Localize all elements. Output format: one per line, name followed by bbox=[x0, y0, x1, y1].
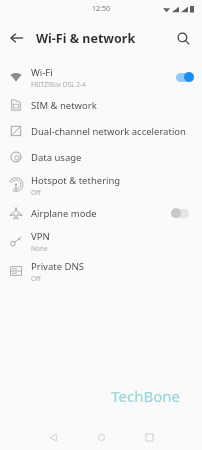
staticText: Off bbox=[31, 274, 41, 283]
staticText: None bbox=[31, 244, 48, 253]
button[interactable]: Airplane mode bbox=[0, 200, 202, 226]
button[interactable]: Home bbox=[86, 424, 116, 450]
staticText: Airplane mode bbox=[31, 207, 97, 220]
staticText: FRITZ!Box DSL 2-4 bbox=[31, 80, 86, 89]
staticText: VPN bbox=[31, 230, 50, 243]
staticText: Hotspot & tethering bbox=[31, 174, 121, 187]
staticText: Private DNS bbox=[31, 260, 84, 273]
staticText: Dual-channel network acceleration bbox=[31, 125, 186, 138]
button[interactable]: Hotspot & tethering bbox=[0, 170, 202, 200]
button[interactable]: Wi-Fi bbox=[0, 62, 202, 92]
button[interactable]: Recent apps bbox=[134, 424, 164, 450]
button[interactable]: Dual-channel network acceleration bbox=[0, 118, 202, 144]
staticText: Wi-Fi & network bbox=[36, 30, 136, 47]
staticText: Data usage bbox=[31, 151, 82, 164]
button[interactable]: VPN bbox=[0, 226, 202, 256]
staticText: Wi-Fi bbox=[31, 66, 53, 79]
button[interactable]: Back bbox=[38, 424, 68, 450]
button[interactable]: Data usage bbox=[0, 144, 202, 170]
button[interactable]: Search bbox=[168, 21, 198, 55]
button[interactable]: Private DNS bbox=[0, 256, 202, 286]
staticText: Off bbox=[31, 188, 41, 197]
button[interactable]: SIM & network bbox=[0, 92, 202, 118]
button[interactable]: Back bbox=[0, 21, 34, 55]
staticText: 12:50 bbox=[92, 4, 110, 14]
staticText: TechBone bbox=[0, 386, 180, 406]
staticText: SIM & network bbox=[31, 99, 97, 112]
button[interactable]: Airplane mode toggle off bbox=[162, 201, 202, 225]
button[interactable]: Wi-Fi toggle on bbox=[162, 65, 202, 89]
